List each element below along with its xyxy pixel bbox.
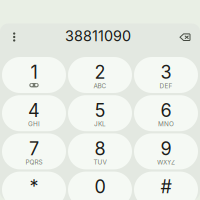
staticText: GHI bbox=[28, 120, 40, 128]
staticText: 5 bbox=[94, 99, 105, 121]
staticText: TUV bbox=[93, 158, 106, 166]
staticText: 2 bbox=[94, 61, 105, 83]
staticText: 38811090 bbox=[65, 27, 131, 45]
staticText: DEF bbox=[159, 82, 172, 90]
staticText: 6 bbox=[160, 99, 171, 121]
button[interactable]: 3 bbox=[134, 57, 198, 93]
staticText: WXYZ bbox=[157, 158, 175, 166]
button[interactable]: 7 bbox=[2, 133, 66, 169]
button[interactable]: 4 bbox=[2, 95, 66, 131]
staticText: # bbox=[160, 176, 171, 198]
button[interactable]: 2 bbox=[68, 57, 132, 93]
button[interactable]: 8 bbox=[68, 133, 132, 169]
button[interactable]: # bbox=[134, 172, 198, 200]
staticText: PQRS bbox=[25, 158, 42, 166]
button[interactable]: 0 bbox=[68, 172, 132, 200]
staticText: 7 bbox=[29, 138, 39, 159]
button[interactable]: * bbox=[2, 172, 66, 200]
staticText: 4 bbox=[28, 99, 40, 121]
staticText: ABC bbox=[93, 82, 106, 90]
button[interactable]: 6 bbox=[134, 95, 198, 131]
button[interactable]: 5 bbox=[68, 95, 132, 131]
button[interactable]: More options bbox=[3, 26, 25, 48]
staticText: 0 bbox=[94, 176, 105, 198]
staticText: 8 bbox=[94, 138, 105, 159]
staticText: JKL bbox=[94, 120, 106, 128]
button[interactable]: Delete bbox=[174, 26, 196, 48]
button[interactable]: 9 bbox=[134, 133, 198, 169]
staticText: 1 bbox=[30, 61, 37, 83]
staticText: 3 bbox=[160, 61, 171, 83]
staticText: 9 bbox=[160, 138, 171, 159]
button[interactable]: 1 bbox=[2, 57, 66, 93]
staticText: * bbox=[29, 176, 38, 198]
staticText: MNO bbox=[158, 120, 174, 128]
